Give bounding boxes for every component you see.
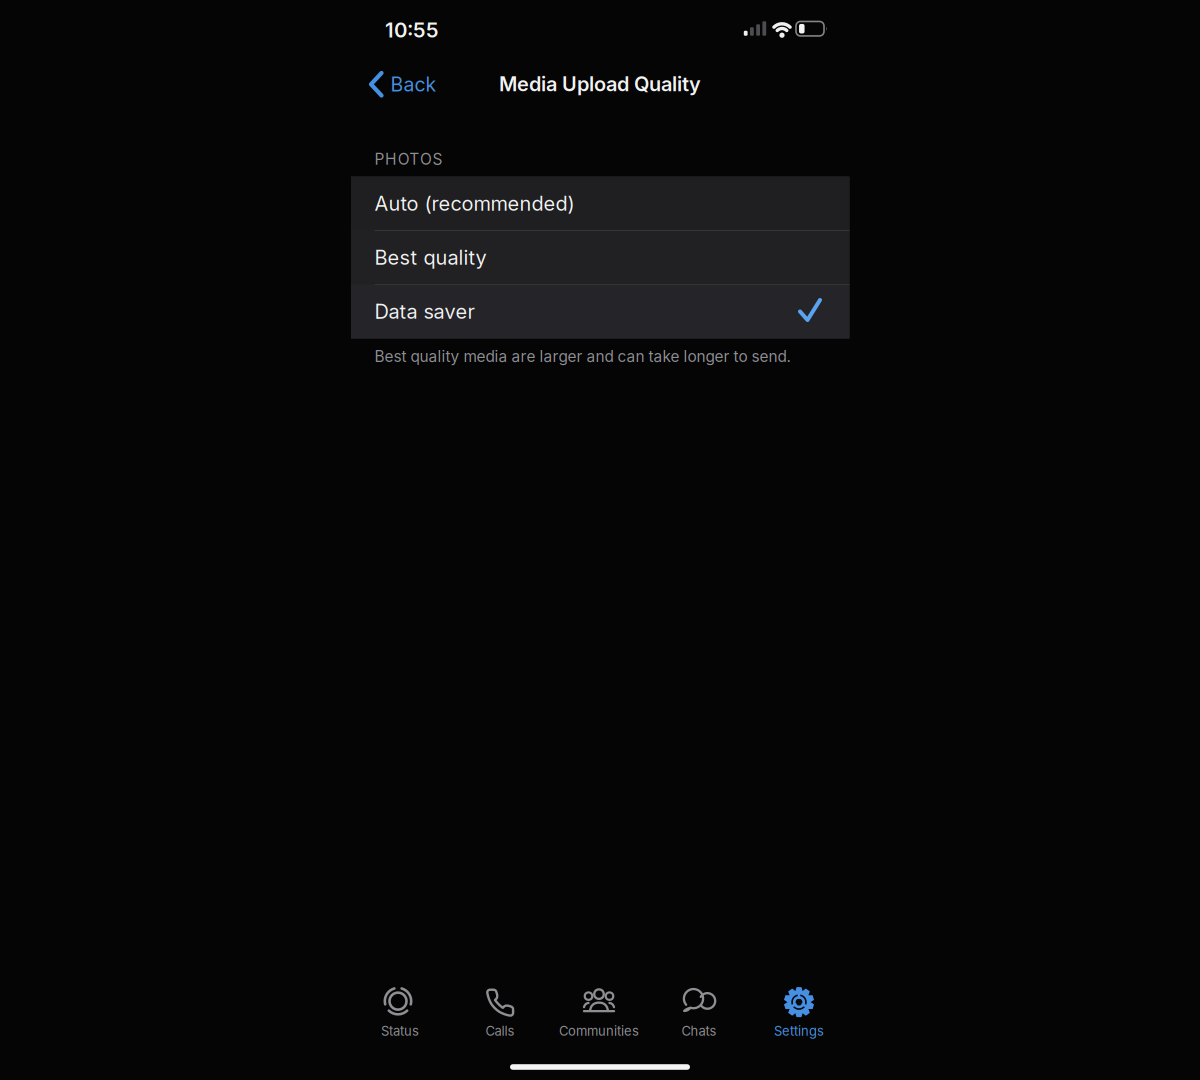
button[interactable]: Best quality — [351, 230, 849, 284]
button[interactable]: Chats — [639, 980, 759, 1046]
staticText: Data saver — [374, 299, 474, 324]
button[interactable]: Data saver — [351, 284, 849, 338]
button[interactable]: Auto (recommended) — [351, 176, 849, 230]
staticText: 10:55 — [385, 18, 439, 42]
staticText: Back — [390, 73, 436, 96]
button[interactable]: Settings — [739, 980, 859, 1046]
staticText: Status — [381, 1023, 419, 1039]
button[interactable]: Back — [353, 62, 453, 106]
staticText: Settings — [774, 1023, 824, 1039]
staticText: Media Upload Quality — [499, 72, 701, 96]
staticText: Communities — [559, 1023, 639, 1039]
staticText: PHOTOS — [374, 150, 442, 168]
button[interactable]: Status — [340, 980, 460, 1046]
staticText: Auto (recommended) — [374, 191, 574, 216]
staticText: Calls — [485, 1023, 514, 1039]
staticText: Chats — [681, 1023, 716, 1039]
staticText: Best quality media are larger and can ta… — [374, 347, 790, 366]
button[interactable]: Communities — [539, 980, 659, 1046]
button[interactable]: Calls — [440, 980, 560, 1046]
staticText: Best quality — [374, 245, 486, 270]
